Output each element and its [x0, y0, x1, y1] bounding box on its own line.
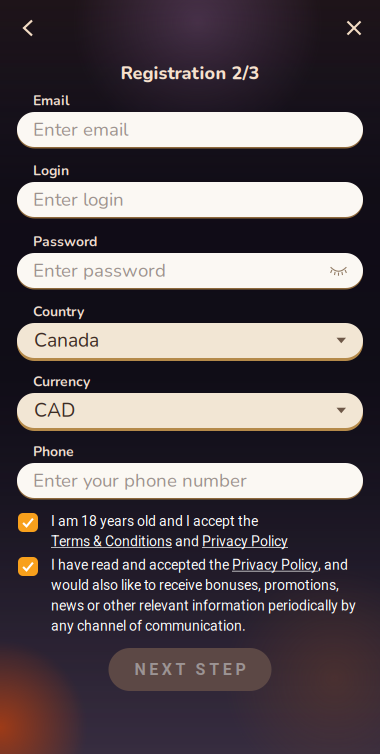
staticText: Enter login	[33, 187, 124, 212]
staticText: Currency	[33, 372, 90, 391]
staticText: Email	[33, 91, 69, 110]
staticText: Phone	[33, 442, 74, 461]
button[interactable]: Back	[8, 9, 48, 47]
staticText: Enter email	[33, 117, 129, 142]
staticText: would also like to receive bonuses, prom…	[51, 577, 339, 593]
staticText: Enter password	[33, 258, 166, 283]
button[interactable]: NEXT STEP	[108, 648, 271, 691]
button[interactable]: I have read and accepted the Privacy Pol…	[18, 557, 356, 634]
staticText: Enter your phone number	[33, 468, 247, 493]
staticText: Terms & Conditions and Privacy Policy	[51, 533, 288, 549]
staticText: Password	[33, 232, 97, 251]
staticText: Country	[33, 302, 84, 321]
staticText: I have read and accepted the Privacy Pol…	[51, 557, 348, 573]
staticText: NEXT STEP	[135, 660, 245, 679]
staticText: news or other relevant information perio…	[51, 597, 356, 614]
button[interactable]: I am 18 years old and I accept the	[18, 513, 288, 549]
staticText: any channel of communication.	[51, 618, 246, 634]
staticText: Canada	[34, 327, 99, 354]
staticText: Login	[33, 161, 69, 180]
staticText: Registration 2/3	[120, 61, 259, 86]
staticText: CAD	[34, 397, 75, 424]
staticText: I am 18 years old and I accept the	[51, 513, 258, 529]
button[interactable]: Close	[334, 9, 374, 47]
